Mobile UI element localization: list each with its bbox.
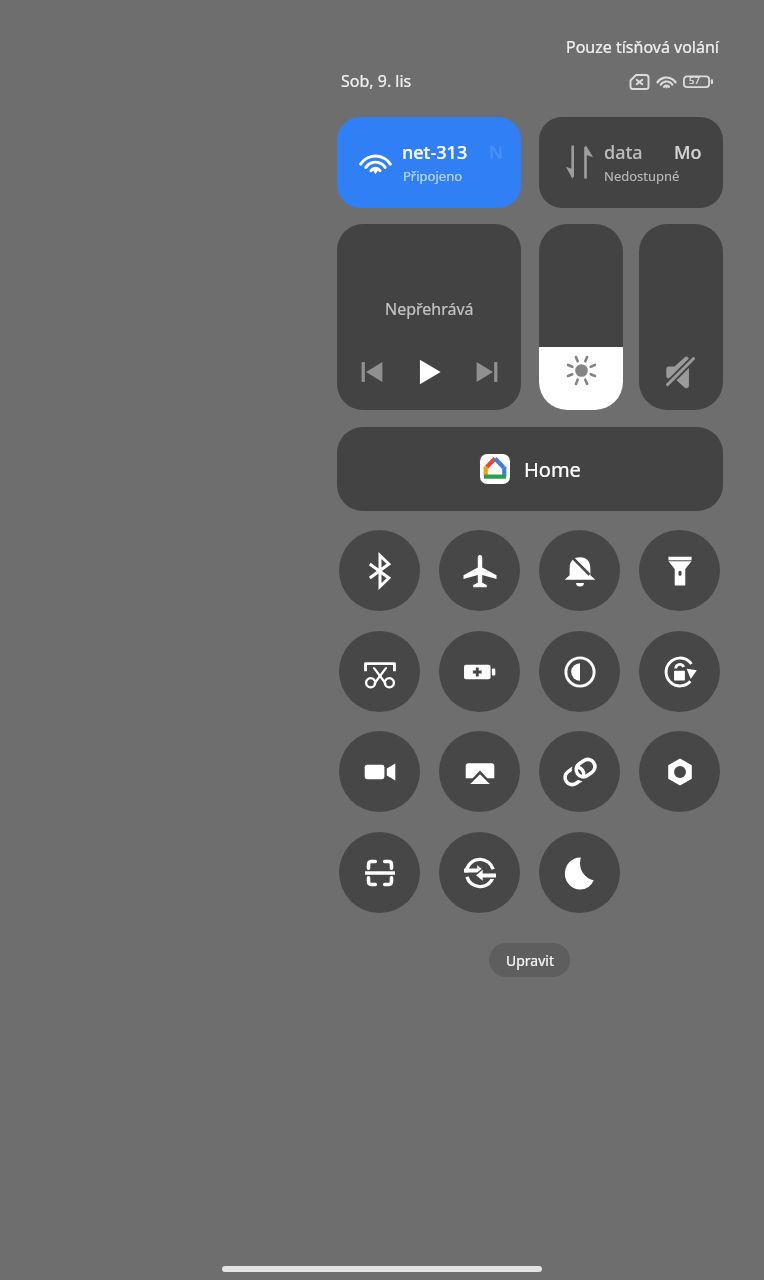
staticText: Připojeno <box>403 167 463 185</box>
button[interactable]: Brightness <box>539 224 623 410</box>
button[interactable]: data <box>539 117 723 208</box>
button[interactable]: Home <box>337 427 723 511</box>
button[interactable]: Data saver <box>439 832 520 913</box>
button[interactable]: Volume muted <box>639 224 723 410</box>
button[interactable]: Flashlight <box>639 530 720 611</box>
staticText: 57 <box>689 74 700 87</box>
button[interactable]: Auto-rotate <box>639 631 720 712</box>
button[interactable]: Battery saver <box>439 631 520 712</box>
button[interactable]: Nepřehrává <box>337 224 521 410</box>
button[interactable]: Nearby Share <box>539 731 620 812</box>
staticText: data <box>604 140 643 165</box>
button[interactable]: Dark theme <box>539 631 620 712</box>
staticText: Mo <box>674 140 702 165</box>
staticText: net-313 <box>402 140 468 165</box>
staticText: Sob, 9. lis <box>341 70 412 92</box>
staticText: Nepřehrává <box>385 298 474 320</box>
button[interactable]: Cast <box>439 731 520 812</box>
button[interactable]: Screen record <box>339 731 420 812</box>
staticText: N <box>489 140 503 165</box>
button[interactable]: net-313 <box>337 117 521 208</box>
staticText: Home <box>524 456 581 483</box>
button[interactable]: Night light <box>539 832 620 913</box>
staticText: Nedostupné <box>604 167 680 185</box>
staticText: Upravit <box>506 951 554 970</box>
staticText: Pouze tísňová volání <box>566 36 719 58</box>
button[interactable]: Device controls <box>639 731 720 812</box>
button[interactable]: Bluetooth <box>339 530 420 611</box>
button[interactable]: Airplane mode <box>439 530 520 611</box>
button[interactable]: Do not disturb <box>539 530 620 611</box>
button[interactable]: Upravit <box>489 943 570 977</box>
button[interactable]: Screenshot <box>339 631 420 712</box>
button[interactable]: Scan QR code <box>339 832 420 913</box>
